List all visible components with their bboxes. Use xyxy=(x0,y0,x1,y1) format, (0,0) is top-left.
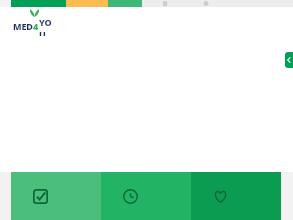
button[interactable]: Favourites xyxy=(191,172,281,220)
button[interactable]: History xyxy=(101,172,191,220)
staticText: YOU xyxy=(39,16,53,36)
button[interactable]: MED4YOU home xyxy=(13,9,53,29)
button[interactable]: Tasks xyxy=(11,172,101,220)
staticText: 4 xyxy=(33,20,39,32)
button[interactable]: Open side panel xyxy=(285,52,293,68)
staticText: MED xyxy=(13,20,33,32)
